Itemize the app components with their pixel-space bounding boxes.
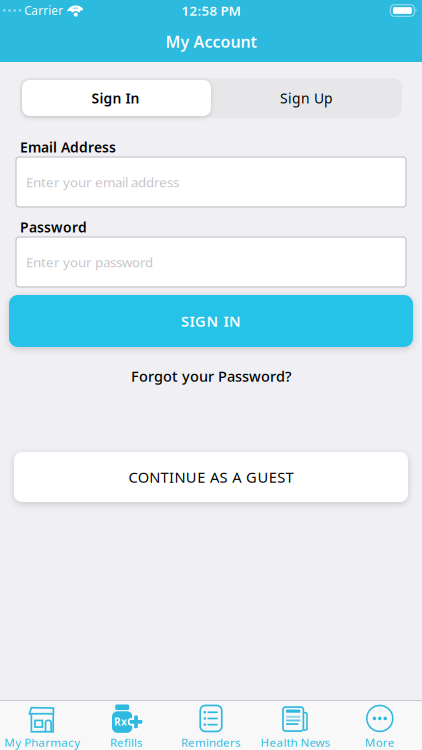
staticText: Enter your email address (26, 173, 179, 191)
staticText: Health News (260, 734, 330, 750)
button[interactable]: My Pharmacy (0, 700, 84, 750)
button[interactable]: Sign In (20, 78, 211, 118)
staticText: Email Address (20, 138, 116, 156)
staticText: Reminders (181, 734, 241, 750)
button[interactable]: Refills (84, 700, 169, 750)
staticText: Password (20, 218, 87, 236)
staticText: Sign In (91, 89, 139, 107)
staticText: CONTINUE AS A GUEST (128, 467, 294, 487)
staticText: Forgot your Password? (131, 366, 291, 386)
staticText: Sign Up (280, 89, 333, 107)
button[interactable]: CONTINUE AS A GUEST (0, 452, 422, 502)
staticText: More (365, 734, 395, 750)
staticText: 12:58 PM (181, 1, 240, 20)
button[interactable]: Enter your email address (0, 157, 422, 207)
staticText: Carrier (24, 2, 63, 18)
staticText: Refills (110, 734, 143, 750)
button[interactable]: Enter your password (0, 237, 422, 287)
staticText: Rx (114, 715, 127, 728)
button[interactable]: Reminders (169, 700, 253, 750)
staticText: My Pharmacy (4, 734, 80, 750)
button[interactable]: SIGN IN (0, 295, 422, 347)
staticText: Enter your password (26, 253, 153, 271)
staticText: My Account (165, 31, 256, 52)
button[interactable]: Forgot your Password? (131, 366, 291, 386)
button[interactable]: Sign Up (211, 78, 402, 118)
button[interactable]: Health News (253, 700, 338, 750)
button[interactable]: More (338, 700, 422, 750)
staticText: SIGN IN (181, 311, 241, 331)
